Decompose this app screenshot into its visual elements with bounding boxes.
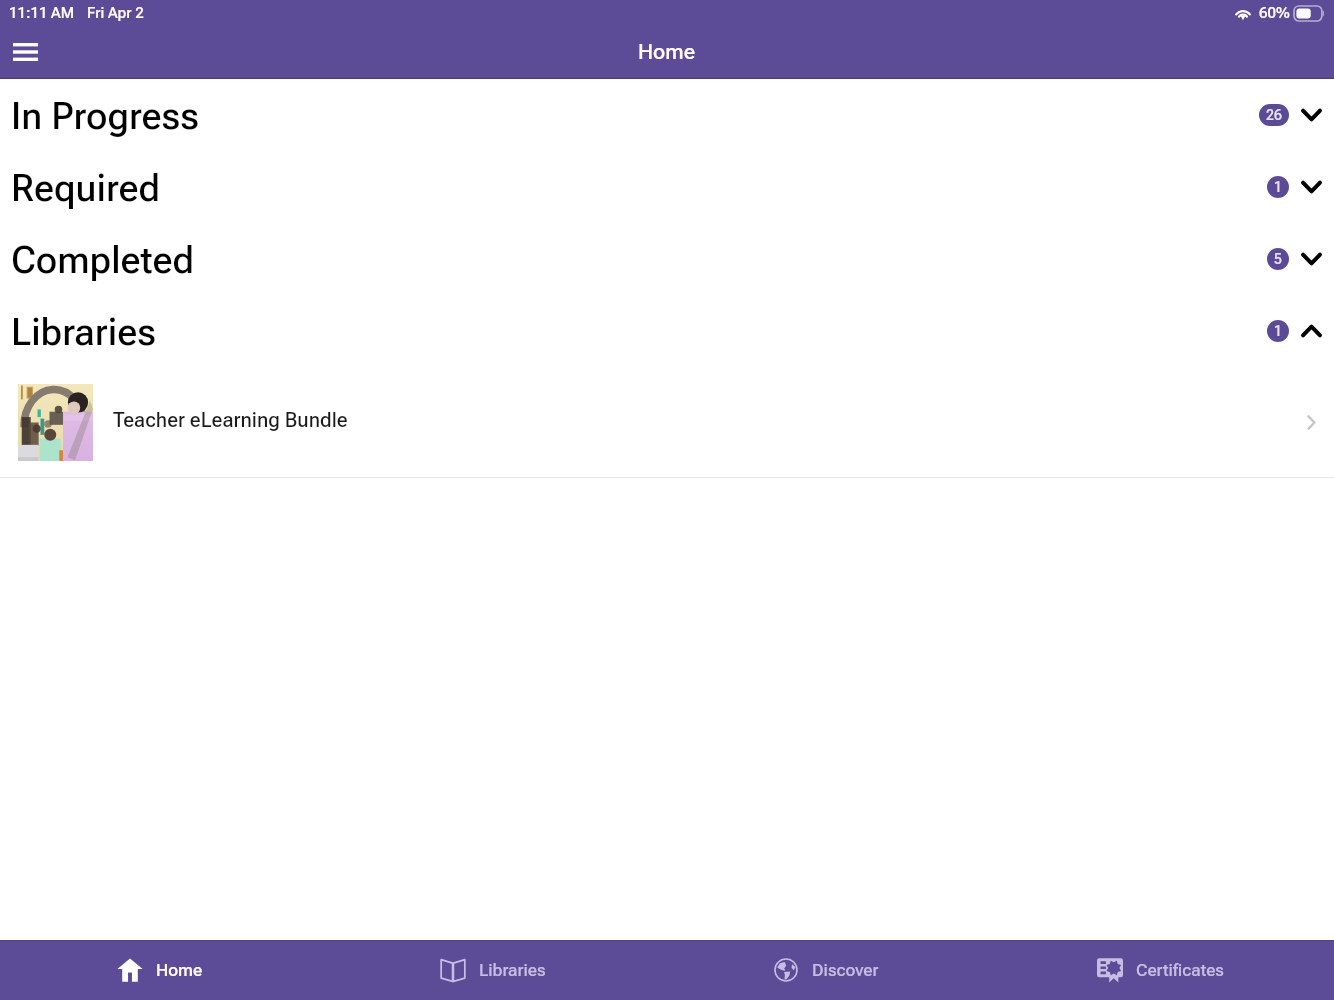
button[interactable]: Certificates [1000,940,1334,1000]
button[interactable]: Required [0,151,1334,223]
staticText: Teacher eLearning Bundle [113,408,348,431]
staticText: Certificates [1136,960,1224,980]
button[interactable]: Expand Required [1301,176,1322,198]
button[interactable]: Open navigation menu [1,28,49,76]
button[interactable]: Collapse Libraries [1301,320,1322,342]
staticText: 1 [1274,179,1282,195]
staticText: 60% [1259,4,1290,22]
button[interactable]: Teacher eLearning Bundle [0,367,1334,477]
staticText: Home [156,960,203,980]
button[interactable]: Expand In Progress [1301,104,1322,126]
staticText: Libraries [479,960,546,980]
staticText: Discover [812,960,879,980]
staticText: Completed [11,239,195,282]
staticText: In Progress [11,95,199,138]
staticText: 5 [1274,251,1282,267]
button[interactable]: Discover [666,940,1000,1000]
staticText: 11:11 AM [9,4,75,22]
button[interactable]: Libraries [0,295,1334,367]
staticText: Required [11,167,161,210]
button[interactable]: Expand Completed [1301,248,1322,270]
staticText: Libraries [11,311,156,354]
button[interactable]: Completed [0,223,1334,295]
button[interactable]: Home [0,940,333,1000]
staticText: Fri Apr 2 [87,4,144,22]
staticText: 26 [1266,107,1282,123]
staticText: 1 [1274,323,1282,339]
staticText: Home [638,40,696,65]
button[interactable]: In Progress [0,79,1334,151]
button[interactable]: Libraries [333,940,666,1000]
